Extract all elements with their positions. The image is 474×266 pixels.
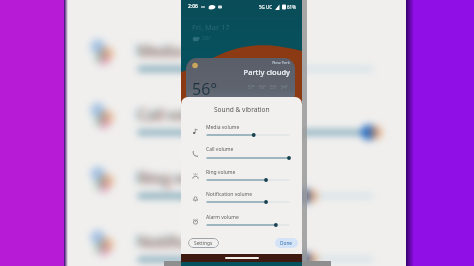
staticText: Media volume	[139, 40, 244, 61]
button[interactable]	[181, 166, 302, 186]
staticText: Notification volume	[134, 230, 279, 251]
button[interactable]	[181, 211, 302, 231]
staticText: Notification volume	[136, 230, 281, 251]
staticText: Call volume	[136, 103, 222, 124]
button[interactable]: Done	[275, 238, 298, 248]
staticText: Ring volume	[141, 168, 233, 189]
staticText: 56°	[257, 84, 268, 90]
staticText: Settings	[194, 240, 213, 247]
staticText: Sound & vibration	[214, 105, 270, 114]
staticText: 56°	[202, 34, 212, 42]
staticText: Call volume	[206, 146, 234, 153]
staticText: Alarm volume	[206, 214, 239, 221]
staticText: Notification volume	[206, 191, 253, 198]
staticText: Notification volume	[141, 232, 286, 253]
staticText: New York	[235, 60, 290, 65]
staticText: Media volume	[134, 39, 239, 60]
staticText: Fri, Mar 17	[192, 22, 230, 32]
staticText: Partly cloudy	[215, 67, 290, 77]
button[interactable]	[181, 188, 302, 208]
staticText: Notification volume	[137, 231, 282, 252]
button[interactable]	[181, 144, 302, 164]
staticText: 5G UC	[259, 4, 273, 10]
staticText: Media volume	[136, 40, 241, 61]
staticText: Ring volume	[134, 166, 226, 187]
staticText: Call volume	[137, 104, 223, 125]
staticText: 54°	[279, 84, 290, 90]
staticText: 56°	[192, 78, 218, 100]
staticText: 61%	[287, 4, 296, 10]
staticText: Media volume	[137, 40, 242, 61]
staticText: Notification volume	[139, 231, 284, 252]
staticText: Ring volume	[139, 167, 231, 188]
staticText: 2:06	[188, 3, 198, 10]
staticText: Ring volume	[206, 169, 236, 176]
staticText: Ring volume	[137, 167, 229, 188]
button[interactable]: New York	[186, 58, 295, 104]
staticText: Media volume	[206, 124, 240, 131]
button[interactable]: Settings	[188, 238, 219, 248]
staticText: 57°	[246, 84, 257, 90]
staticText: Call volume	[139, 104, 225, 125]
staticText: 55°	[268, 84, 279, 90]
staticText: Ring volume	[136, 167, 228, 188]
staticText: Call volume	[134, 103, 220, 124]
staticText: Done	[280, 240, 293, 247]
staticText: Call volume	[141, 104, 227, 125]
button[interactable]	[181, 121, 302, 141]
staticText: Media volume	[141, 41, 246, 62]
